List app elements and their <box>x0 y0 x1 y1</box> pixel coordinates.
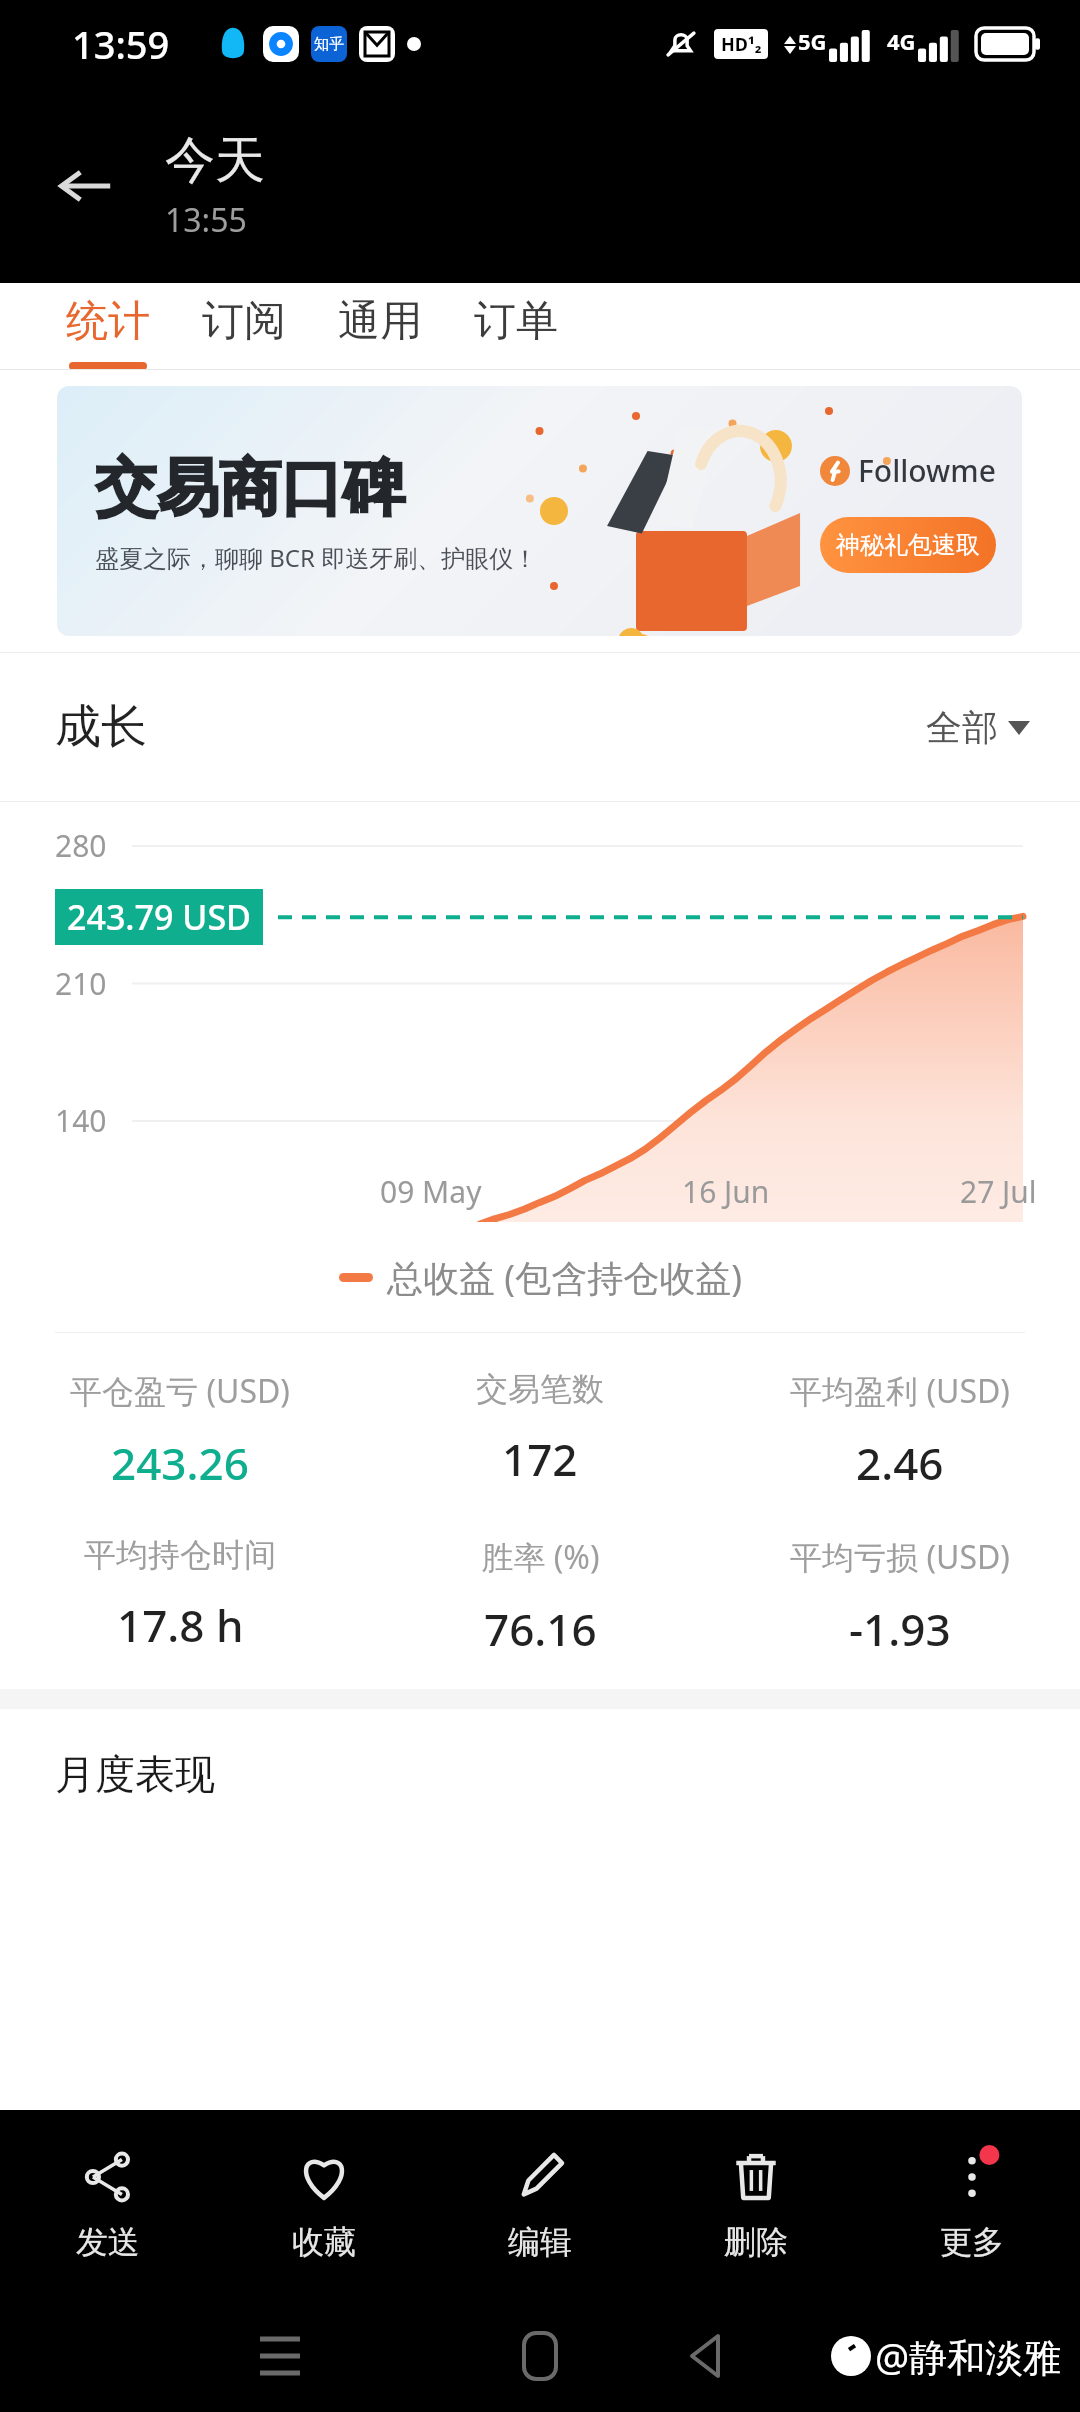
button[interactable]: 交易商口碑 <box>57 386 1022 636</box>
staticText: @静和淡雅 <box>875 2330 1062 2382</box>
staticText: 平均盈利 (USD) <box>790 1369 1010 1413</box>
staticText: 成长 <box>55 698 147 756</box>
staticText: 243.26 <box>111 1433 249 1493</box>
staticText: 月度表现 <box>55 1749 215 1799</box>
button[interactable]: 平仓盈亏 (USD) <box>0 1369 360 1493</box>
staticText: HD¹₂ <box>721 32 762 57</box>
staticText: 2.46 <box>856 1433 944 1493</box>
staticText: 交易商口碑 <box>95 449 405 527</box>
staticText: 280 <box>55 825 107 866</box>
button[interactable]: 发送 <box>0 2110 216 2300</box>
button[interactable]: 订阅 <box>176 283 312 370</box>
staticText: 13:55 <box>165 198 247 242</box>
staticText: 胜率 (%) <box>481 1535 600 1579</box>
button[interactable]: 最近任务 <box>245 2321 315 2391</box>
button[interactable]: 返回 <box>40 141 130 231</box>
button[interactable]: 平均盈利 (USD) <box>720 1369 1080 1493</box>
staticText: 删除 <box>724 2222 788 2262</box>
button[interactable]: 更多 <box>864 2110 1080 2300</box>
staticText: 5G <box>798 26 827 56</box>
staticText: 76.16 <box>484 1599 597 1659</box>
button[interactable]: 删除 <box>648 2110 864 2300</box>
staticText: 17.8 h <box>117 1595 244 1655</box>
staticText: 编辑 <box>508 2222 572 2262</box>
staticText: 交易笔数 <box>476 1369 604 1409</box>
staticText: 盛夏之际，聊聊 BCR 即送牙刷、护眼仪！ <box>95 541 538 574</box>
staticText: 243.79 USD <box>67 894 251 940</box>
staticText: 16 Jun <box>682 1171 770 1212</box>
staticText: 140 <box>55 1100 107 1141</box>
staticText: -1.93 <box>849 1599 951 1659</box>
staticText: Followme <box>858 450 996 491</box>
staticText: 0 <box>55 1375 73 1416</box>
staticText: 通用 <box>338 295 422 348</box>
staticText: 09 May <box>380 1171 482 1212</box>
button[interactable]: 神秘礼包速取 <box>820 517 996 573</box>
button[interactable]: 平均持仓时间 <box>0 1535 360 1655</box>
staticText: 神秘礼包速取 <box>836 530 980 560</box>
staticText: 订阅 <box>202 295 286 348</box>
staticText: 总收益 (包含持仓收益) <box>387 1253 742 1302</box>
staticText: 4G <box>887 26 916 56</box>
staticText: 210 <box>55 963 107 1004</box>
staticText: 知乎 <box>314 35 344 54</box>
button[interactable]: 全部 <box>926 705 1030 750</box>
staticText: 平均持仓时间 <box>84 1535 276 1575</box>
button[interactable]: 平均亏损 (USD) <box>720 1535 1080 1659</box>
staticText: 今天 <box>165 129 265 192</box>
button[interactable]: 交易笔数 <box>360 1369 720 1489</box>
staticText: 平均亏损 (USD) <box>790 1535 1010 1579</box>
button[interactable]: 主页 <box>505 2321 575 2391</box>
button[interactable]: 订单 <box>448 283 584 370</box>
staticText: 全部 <box>926 705 998 750</box>
staticText: 统计 <box>66 295 150 348</box>
staticText: 平仓盈亏 (USD) <box>70 1369 290 1413</box>
staticText: 13:59 <box>72 18 170 70</box>
staticText: 27 Jul <box>960 1171 1037 1212</box>
button[interactable]: 返回 <box>670 2321 740 2391</box>
button[interactable]: 统计 <box>40 283 176 370</box>
button[interactable]: 通用 <box>312 283 448 370</box>
button[interactable]: 胜率 (%) <box>360 1535 720 1659</box>
button[interactable]: 收藏 <box>216 2110 432 2300</box>
staticText: 发送 <box>76 2222 140 2262</box>
staticText: 收藏 <box>292 2222 356 2262</box>
staticText: 更多 <box>940 2222 1004 2262</box>
staticText: 订单 <box>474 295 558 348</box>
button[interactable]: 编辑 <box>432 2110 648 2300</box>
staticText: 172 <box>502 1429 578 1489</box>
